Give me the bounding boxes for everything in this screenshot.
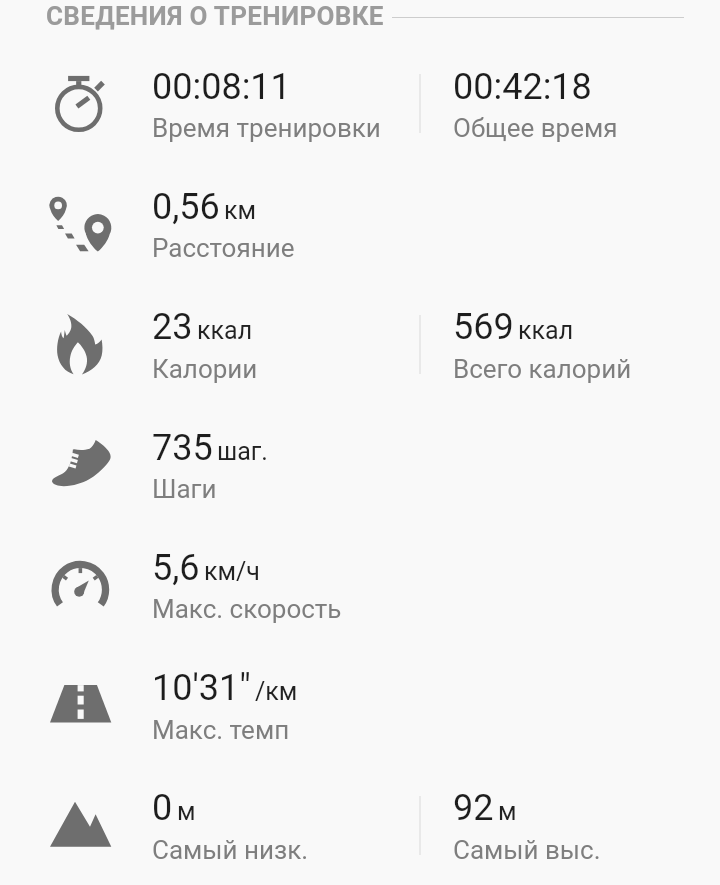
staticText: Общее время bbox=[453, 113, 618, 143]
staticText: 10'31" bbox=[152, 667, 251, 709]
staticText: Расстояние bbox=[152, 233, 295, 263]
staticText: 569 bbox=[453, 306, 514, 348]
staticText: Всего калорий bbox=[453, 354, 632, 384]
button[interactable] bbox=[0, 523, 720, 643]
staticText: Калории bbox=[152, 354, 258, 384]
other: Время тренировки bbox=[35, 52, 125, 142]
staticText: км bbox=[224, 196, 257, 225]
button[interactable] bbox=[0, 162, 720, 282]
other: Самый низк. bbox=[35, 774, 125, 864]
button[interactable] bbox=[0, 402, 720, 522]
staticText: 00:08:11 bbox=[152, 66, 291, 108]
staticText: 5,6 bbox=[152, 547, 200, 589]
button[interactable] bbox=[0, 763, 720, 883]
staticText: 23 bbox=[152, 306, 193, 348]
staticText: 0,56 bbox=[152, 186, 220, 228]
staticText: шаг. bbox=[217, 437, 268, 466]
staticText: 735 bbox=[152, 427, 213, 469]
staticText: Шаги bbox=[152, 474, 217, 504]
button[interactable] bbox=[0, 41, 720, 161]
staticText: 92 bbox=[453, 787, 494, 829]
button[interactable] bbox=[0, 282, 720, 402]
staticText: Макс. скорость bbox=[152, 594, 342, 624]
other: Макс. темп bbox=[35, 654, 125, 744]
staticText: м bbox=[498, 797, 517, 826]
other: Макс. скорость bbox=[35, 534, 125, 624]
staticText: км/ч bbox=[204, 557, 260, 586]
staticText: Самый выс. bbox=[453, 835, 601, 865]
staticText: ккал bbox=[197, 316, 253, 345]
staticText: 00:42:18 bbox=[453, 66, 592, 108]
button[interactable] bbox=[0, 643, 720, 763]
staticText: ккал bbox=[518, 316, 574, 345]
other: Калории bbox=[35, 293, 125, 383]
button[interactable]: СВЕДЕНИЯ О ТРЕНИРОВКЕ bbox=[46, 1, 384, 31]
staticText: Самый низк. bbox=[152, 835, 309, 865]
other: Расстояние bbox=[35, 173, 125, 263]
staticText: СВЕДЕНИЯ О ТРЕНИРОВКЕ bbox=[46, 1, 384, 31]
staticText: Время тренировки bbox=[152, 113, 381, 143]
other: Шаги bbox=[35, 413, 125, 503]
staticText: /км bbox=[255, 677, 298, 706]
staticText: Макс. темп bbox=[152, 715, 290, 745]
staticText: м bbox=[177, 797, 196, 826]
staticText: 0 bbox=[152, 787, 173, 829]
